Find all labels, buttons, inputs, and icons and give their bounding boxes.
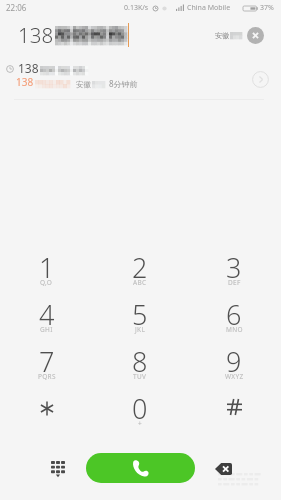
button[interactable] [187,383,281,430]
staticText: MNO [226,325,243,334]
button[interactable]: 9 [187,336,281,383]
button[interactable]: 4 [0,289,93,336]
button[interactable]: 3 [187,242,281,289]
button[interactable]: 7 [0,336,93,383]
staticText: 0 [132,390,148,427]
staticText: 7 [39,343,55,380]
staticText: 138 [18,60,39,76]
staticText: WXYZ [225,372,244,381]
staticText: 1 [39,249,55,286]
staticText: 4 [39,296,55,333]
button[interactable]: Clear [247,27,264,44]
button[interactable] [0,383,93,430]
staticText: 0.13K/s [124,3,149,13]
button[interactable]: Open details [247,66,273,92]
staticText: 2 [132,249,148,286]
staticText: 138 [18,21,54,49]
staticText: 9 [226,343,242,380]
button[interactable]: 5 [93,289,187,336]
staticText: 37% [260,3,274,13]
button[interactable]: 138 [0,57,281,101]
staticText: 安徽 [76,80,91,89]
staticText: + [138,419,143,428]
button[interactable]: 1 [0,242,93,289]
staticText: 8分钟前 [109,78,138,89]
button[interactable]: 0 [93,383,187,430]
staticText: Q,O [40,278,53,287]
staticText: 3 [226,249,242,286]
staticText: GHI [40,325,53,334]
staticText: PQRS [38,372,56,381]
button[interactable]: 6 [187,289,281,336]
staticText: 5 [132,296,148,333]
staticText: 6 [226,296,242,333]
staticText: 22:06 [6,2,27,13]
staticText: China Mobile [187,3,231,13]
button[interactable]: Call [86,453,195,483]
staticText: 8 [132,343,148,380]
staticText: JKL [135,325,146,334]
staticText: 安徽 [215,31,229,40]
button[interactable]: Backspace [201,447,245,491]
button[interactable]: 8 [93,336,187,383]
staticText: ABC [133,278,147,287]
staticText: DEF [228,278,241,287]
button[interactable]: 2 [93,242,187,289]
staticText: 138 [16,75,34,89]
button[interactable]: Hide keypad [36,445,80,489]
staticText: TUV [133,372,147,381]
